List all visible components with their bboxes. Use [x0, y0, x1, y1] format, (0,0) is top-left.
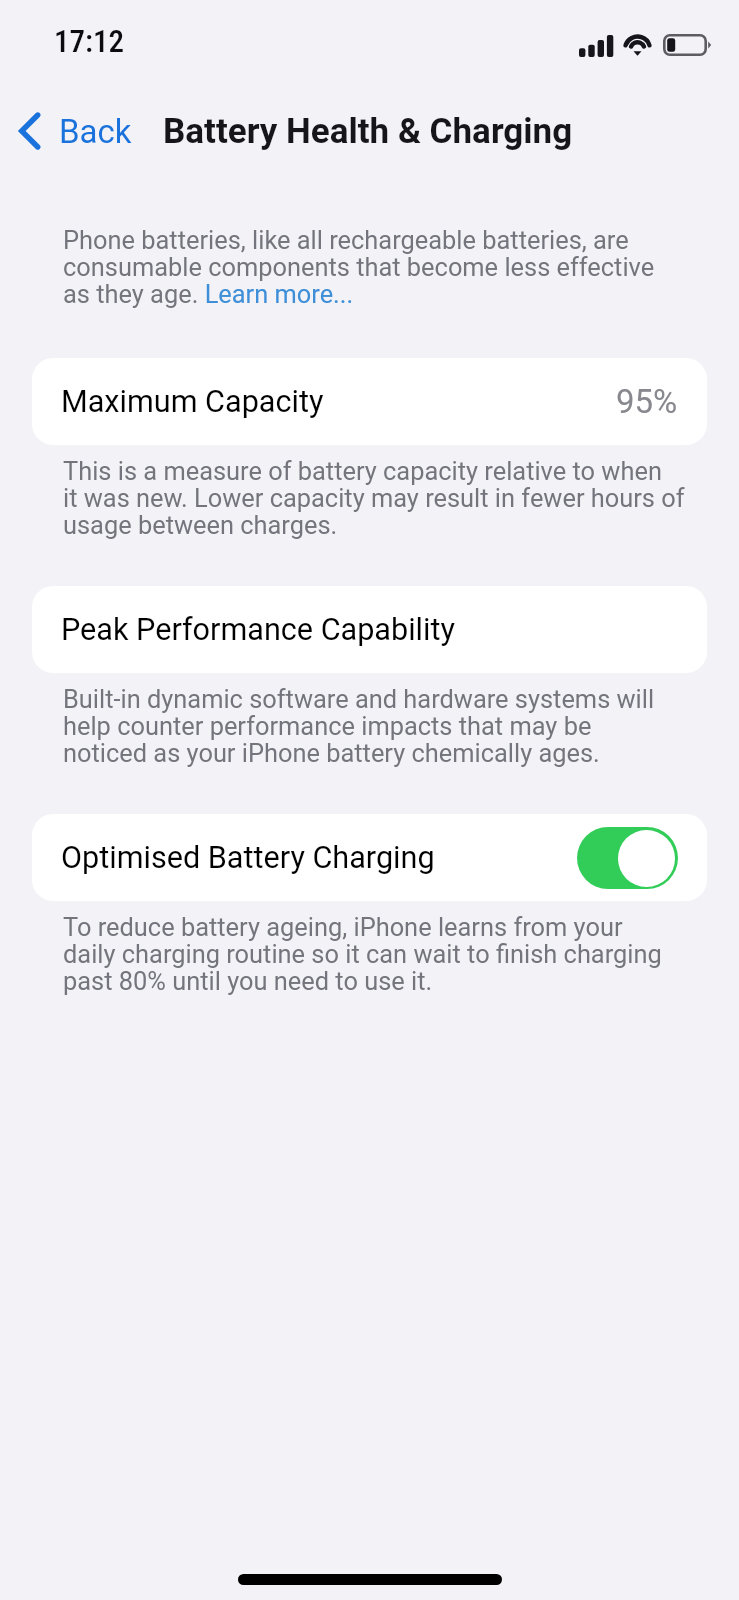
staticText: This is a measure of battery capacity re…	[63, 458, 685, 539]
staticText: 17:12	[54, 23, 125, 59]
staticText: Maximum Capacity	[61, 384, 324, 420]
button[interactable]: Back	[12, 103, 144, 159]
staticText: To reduce battery ageing, iPhone learns …	[63, 914, 662, 995]
button[interactable]: Peak Performance Capability	[32, 586, 707, 673]
staticText: Optimised Battery Charging	[61, 840, 435, 876]
staticText: Back	[59, 112, 132, 151]
staticText: Built-in dynamic software and hardware s…	[63, 686, 655, 767]
button[interactable]: Optimised Battery Charging	[32, 814, 707, 901]
button[interactable]: Optimised Battery Charging toggle	[577, 827, 678, 889]
staticText: 95%	[616, 382, 678, 421]
staticText: Phone batteries, like all rechargeable b…	[63, 227, 655, 308]
staticText: Peak Performance Capability	[61, 612, 455, 648]
button[interactable]: Maximum Capacity	[32, 358, 707, 445]
staticText: Battery Health & Charging	[163, 111, 573, 152]
